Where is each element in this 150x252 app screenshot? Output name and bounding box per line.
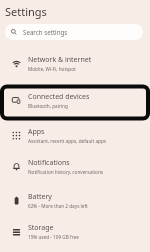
button[interactable]: Notifications <box>0 151 150 182</box>
button[interactable]: Storage <box>0 216 150 247</box>
staticText: 15% used - 109 GB free <box>28 234 79 240</box>
button[interactable]: Connected devices <box>0 85 150 116</box>
staticText: Mobile, Wi-Fi, hotspot <box>28 66 76 72</box>
button[interactable]: Network & internet <box>0 48 150 79</box>
staticText: Apps <box>28 127 45 137</box>
staticText: Assistant, recent apps, default apps <box>28 138 107 144</box>
staticText: Storage <box>28 223 54 233</box>
button[interactable]: Battery <box>0 185 150 216</box>
staticText: Notifications <box>28 158 70 168</box>
staticText: Connected devices <box>28 92 90 102</box>
staticText: 62% - More than 2 days left <box>28 203 88 209</box>
staticText: Search settings <box>23 28 68 36</box>
button[interactable]: Search settings <box>5 24 143 40</box>
staticText: Settings <box>5 4 47 19</box>
staticText: Battery <box>28 192 52 202</box>
button[interactable]: Apps <box>0 120 150 151</box>
staticText: Network & internet <box>28 55 92 65</box>
staticText: Bluetooth, pairing <box>28 103 68 109</box>
staticText: Notification history, conversations <box>28 169 104 175</box>
